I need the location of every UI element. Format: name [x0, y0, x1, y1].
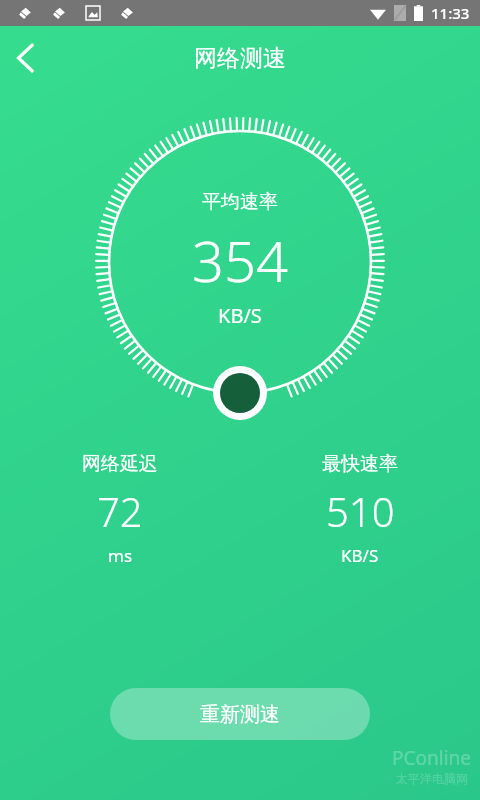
staticText: 网络延迟 [82, 452, 158, 476]
staticText: 太平洋电脑网 [396, 771, 468, 786]
staticText: 72 [97, 484, 143, 538]
staticText: 最快速率 [322, 452, 398, 476]
button[interactable]: Back [0, 32, 52, 84]
staticText: PConline [392, 745, 472, 771]
staticText: 354 [192, 222, 288, 298]
button[interactable]: 重新测速 [110, 688, 370, 740]
staticText: 重新测速 [200, 702, 280, 727]
staticText: KB/S [218, 302, 262, 329]
staticText: KB/S [341, 544, 379, 567]
staticText: 510 [326, 484, 395, 538]
staticText: ms [108, 544, 133, 567]
staticText: 网络测速 [194, 44, 286, 73]
staticText: 平均速率 [202, 190, 278, 214]
staticText: 11:33 [431, 3, 470, 23]
